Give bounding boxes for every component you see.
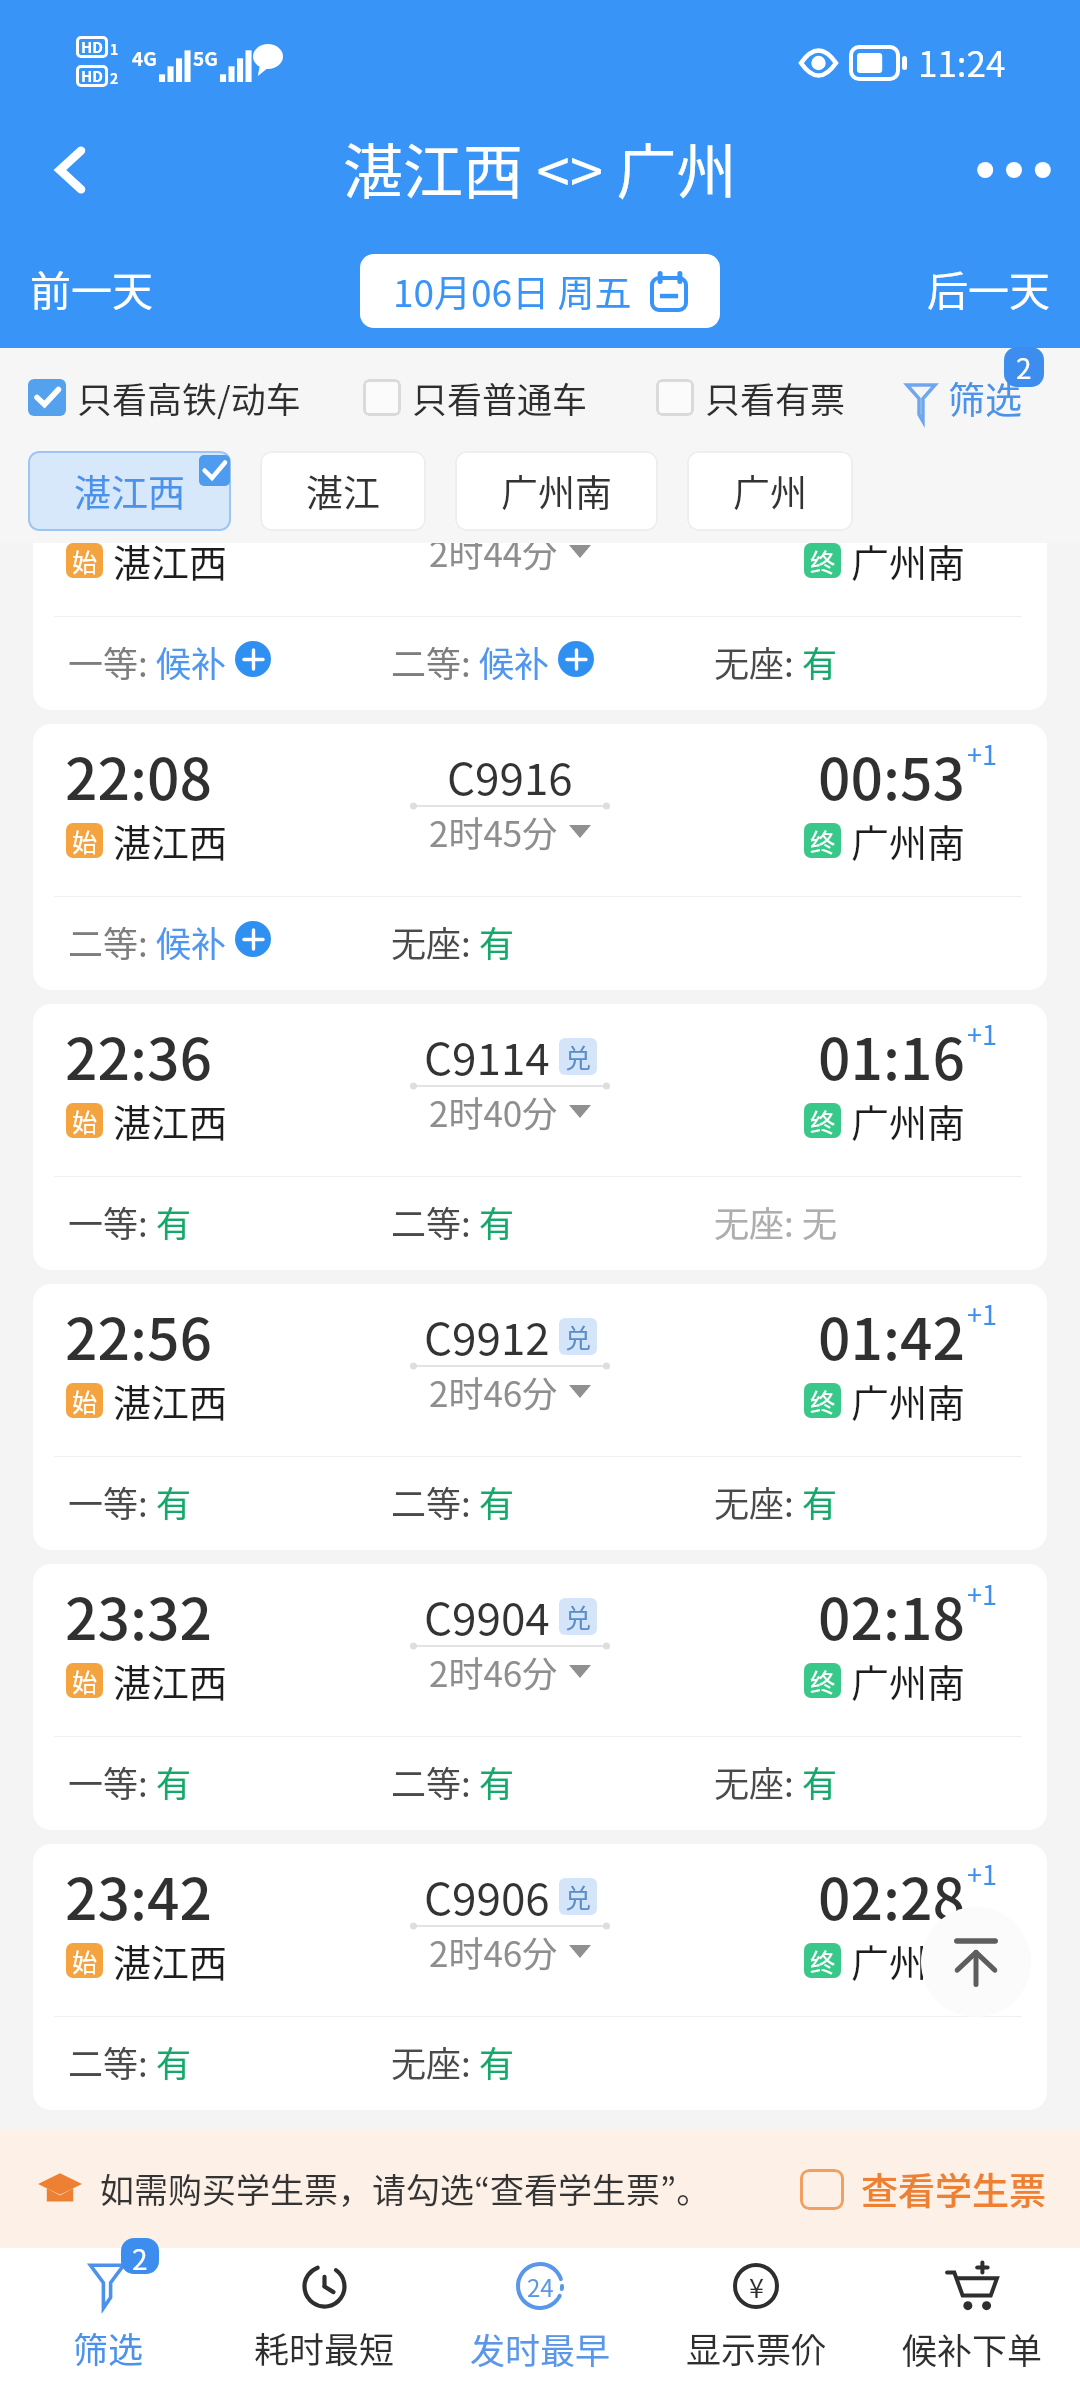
button[interactable]: 耗时最短 bbox=[216, 2248, 432, 2388]
staticText: 兑 bbox=[565, 1598, 592, 1635]
staticText: 始 bbox=[72, 1103, 98, 1138]
staticText: +1 bbox=[967, 1294, 997, 1333]
staticText: 前一天 bbox=[30, 258, 153, 314]
staticText: 有 bbox=[479, 1196, 515, 1242]
staticText: 始 bbox=[72, 543, 98, 578]
staticText: 2 bbox=[1016, 347, 1032, 387]
staticText: 00:53 bbox=[818, 734, 965, 817]
staticText: 广州南 bbox=[851, 1093, 966, 1148]
staticText: 有 bbox=[802, 636, 838, 682]
staticText: 终 bbox=[810, 1103, 836, 1138]
staticText: C9904 bbox=[424, 1584, 550, 1648]
button[interactable]: 后一天 bbox=[927, 258, 1050, 314]
staticText: 候补 bbox=[479, 636, 550, 682]
staticText: 一等: bbox=[68, 636, 156, 682]
button[interactable]: 10月06日 周五 bbox=[360, 254, 720, 328]
button[interactable]: 22:08 bbox=[33, 724, 1047, 990]
staticText: 01:42 bbox=[818, 1294, 965, 1377]
staticText: 始 bbox=[72, 1943, 98, 1978]
staticText: 5G bbox=[193, 44, 218, 72]
staticText: 有 bbox=[156, 1196, 192, 1242]
staticText: 23:42 bbox=[65, 1854, 212, 1937]
staticText: 二等: bbox=[68, 916, 156, 962]
staticText: 有 bbox=[802, 1476, 838, 1522]
staticText: 02:28 bbox=[818, 1854, 965, 1937]
staticText: 终 bbox=[810, 1943, 836, 1978]
staticText: 一等: bbox=[68, 1196, 156, 1242]
button[interactable]: 广州 bbox=[687, 451, 853, 531]
staticText: 显示票价 bbox=[686, 2322, 827, 2373]
staticText: 二等: bbox=[391, 1756, 479, 1802]
staticText: +1 bbox=[967, 1574, 997, 1613]
staticText: C9114 bbox=[424, 1024, 550, 1088]
staticText: 无座: bbox=[391, 916, 479, 962]
button[interactable]: 23:32 bbox=[33, 1564, 1047, 1830]
button[interactable]: 只看有票 bbox=[656, 372, 846, 423]
staticText: 发时最早 bbox=[470, 2323, 611, 2374]
button[interactable]: 只看普通车 bbox=[363, 372, 588, 423]
staticText: 22:56 bbox=[65, 1294, 212, 1377]
staticText: 终 bbox=[810, 543, 836, 578]
staticText: 2时45分 bbox=[429, 806, 558, 857]
staticText: 00:34 bbox=[818, 454, 965, 537]
button[interactable]: 只看高铁/动车 bbox=[28, 372, 301, 423]
staticText: 耗时最短 bbox=[254, 2322, 395, 2373]
staticText: 广州南 bbox=[501, 464, 612, 518]
staticText: 1 bbox=[110, 39, 119, 59]
staticText: 无座: bbox=[714, 1476, 802, 1522]
staticText: +1 bbox=[967, 1014, 997, 1053]
button[interactable]: 筛选 bbox=[906, 371, 1022, 425]
staticText: 湛江西 bbox=[113, 1373, 228, 1428]
staticText: 广州南 bbox=[851, 813, 966, 868]
staticText: 广州南 bbox=[851, 1373, 966, 1428]
button[interactable]: 查看学生票 bbox=[800, 2162, 1046, 2216]
staticText: 湛江西 <> 广州 bbox=[343, 124, 737, 211]
button[interactable]: More options bbox=[970, 126, 1058, 214]
button[interactable]: Back bbox=[26, 126, 114, 214]
staticText: 01:16 bbox=[818, 1014, 965, 1097]
button[interactable]: Scroll to top bbox=[921, 1907, 1031, 2017]
staticText: 2时46分 bbox=[429, 1926, 558, 1977]
button[interactable]: 前一天 bbox=[30, 258, 153, 314]
staticText: 一等: bbox=[68, 1476, 156, 1522]
staticText: +1 bbox=[967, 1854, 997, 1893]
button[interactable]: ¥ bbox=[648, 2248, 864, 2388]
staticText: 只看有票 bbox=[705, 372, 846, 423]
staticText: 有 bbox=[802, 1756, 838, 1802]
staticText: +1 bbox=[967, 734, 997, 773]
staticText: 候补 bbox=[156, 636, 227, 682]
staticText: C9906 bbox=[424, 1864, 550, 1928]
button[interactable]: 22:56 bbox=[33, 1284, 1047, 1550]
staticText: 2时46分 bbox=[429, 1646, 558, 1697]
staticText: 二等: bbox=[391, 636, 479, 682]
staticText: 二等: bbox=[68, 2036, 156, 2082]
staticText: 只看高铁/动车 bbox=[77, 372, 301, 423]
staticText: 2 bbox=[110, 68, 119, 88]
button[interactable]: 21:50 bbox=[33, 444, 1047, 710]
staticText: 广州南 bbox=[851, 1653, 966, 1708]
staticText: 湛江西 bbox=[113, 1653, 228, 1708]
staticText: 11:24 bbox=[918, 36, 1006, 87]
staticText: 有 bbox=[479, 1756, 515, 1802]
button[interactable]: 湛江西 bbox=[28, 451, 231, 531]
button[interactable]: 2 bbox=[0, 2248, 216, 2388]
staticText: 如需购买学生票，请勾选“查看学生票”。 bbox=[100, 2164, 711, 2213]
staticText: 兑 bbox=[565, 1318, 592, 1355]
button[interactable]: 候补下单 bbox=[864, 2248, 1080, 2388]
staticText: 湛江西 bbox=[74, 464, 185, 518]
staticText: 24 bbox=[527, 2269, 554, 2304]
button[interactable]: 广州南 bbox=[455, 451, 658, 531]
button[interactable]: 24 bbox=[432, 2248, 648, 2388]
staticText: 候补下单 bbox=[902, 2323, 1043, 2374]
staticText: HD bbox=[81, 65, 104, 87]
staticText: 10月06日 周五 bbox=[393, 264, 632, 318]
staticText: 只看普通车 bbox=[412, 372, 588, 423]
staticText: 无座: bbox=[714, 636, 802, 682]
staticText: 始 bbox=[72, 1383, 98, 1418]
button[interactable]: 23:42 bbox=[33, 1844, 1047, 2110]
staticText: 筛选 bbox=[73, 2322, 144, 2373]
button[interactable]: 22:36 bbox=[33, 1004, 1047, 1270]
staticText: 02:18 bbox=[818, 1574, 965, 1657]
button[interactable]: 湛江 bbox=[260, 451, 426, 531]
